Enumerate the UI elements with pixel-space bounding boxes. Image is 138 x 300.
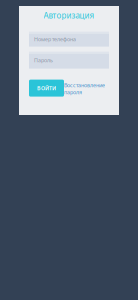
staticText: Восстановление пароля	[64, 82, 105, 96]
staticText: Номер телефона	[34, 36, 76, 43]
staticText: ВОЙТИ	[37, 85, 56, 92]
button[interactable]: ВОЙТИ	[29, 80, 64, 97]
staticText: Авторизация	[43, 10, 94, 21]
staticText: Пароль	[34, 57, 53, 64]
button[interactable]: Восстановление пароля	[64, 80, 110, 96]
